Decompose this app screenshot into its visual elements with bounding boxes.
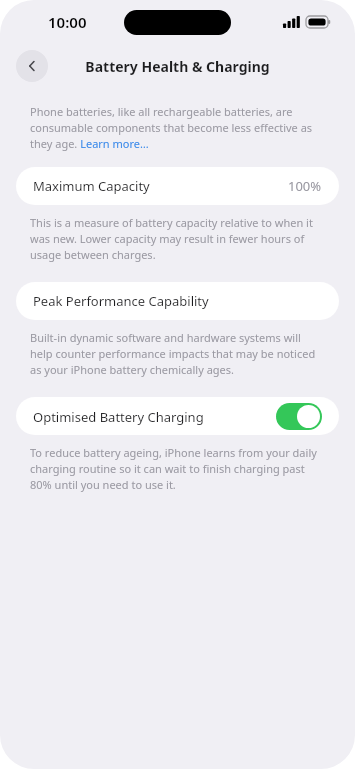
staticText: To reduce battery ageing, iPhone learns … [30, 445, 325, 492]
staticText: 100% [288, 177, 322, 195]
button[interactable]: Optimised Battery Charging toggle [276, 403, 322, 430]
staticText: Phone batteries, like all rechargeable b… [30, 104, 325, 151]
button[interactable]: Peak Performance Capability [16, 282, 339, 320]
staticText: Maximum Capacity [33, 177, 288, 195]
staticText: Battery Health & Charging [85, 57, 270, 76]
staticText: 10:00 [48, 12, 87, 32]
staticText: Optimised Battery Charging [33, 408, 276, 426]
button[interactable]: Maximum Capacity [16, 167, 339, 205]
staticText: This is a measure of battery capacity re… [30, 215, 325, 262]
staticText: Peak Performance Capability [33, 292, 322, 310]
button[interactable]: Back [16, 50, 48, 82]
staticText: Built-in dynamic software and hardware s… [30, 330, 325, 377]
button[interactable]: Optimised Battery Charging [16, 397, 339, 435]
